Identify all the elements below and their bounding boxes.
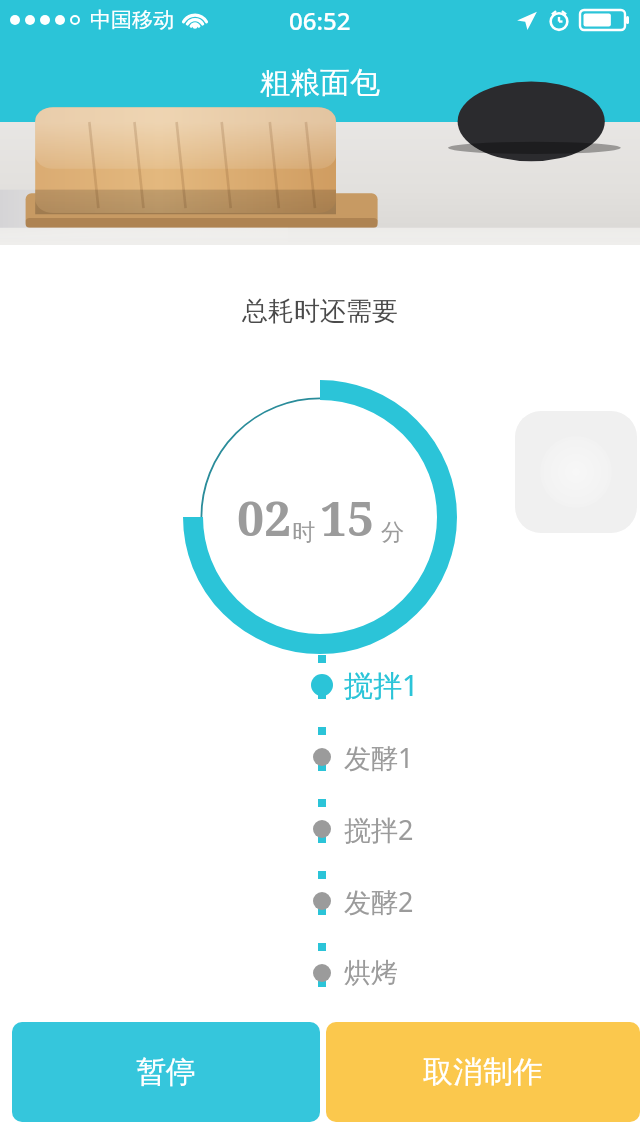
button[interactable]: 搅拌2 <box>344 807 524 851</box>
staticText: 中国移动 <box>90 7 174 33</box>
staticText: 06:52 <box>289 4 351 37</box>
button[interactable]: 发酵1 <box>344 735 524 779</box>
staticText: 搅拌2 <box>344 811 414 848</box>
staticText: 烘烤 <box>344 956 398 990</box>
button[interactable]: 搅拌1 <box>344 663 524 707</box>
button[interactable]: 暂停 <box>12 1022 320 1122</box>
staticText: 发酵2 <box>344 883 414 920</box>
staticText: 粗粮面包 <box>260 64 380 102</box>
staticText: 发酵1 <box>344 739 414 776</box>
staticText: 02 <box>237 485 292 550</box>
staticText: 总耗时还需要 <box>0 295 640 328</box>
button[interactable]: Preview <box>515 411 637 533</box>
staticText: 取消制作 <box>423 1053 543 1091</box>
staticText: 搅拌1 <box>344 665 419 705</box>
staticText: 分 <box>381 518 404 547</box>
button[interactable]: 发酵2 <box>344 879 524 923</box>
staticText: 时 <box>292 518 315 547</box>
button[interactable]: 烘烤 <box>344 951 524 995</box>
staticText: 15 <box>320 485 375 550</box>
button[interactable]: 取消制作 <box>326 1022 640 1122</box>
staticText: 暂停 <box>136 1053 196 1091</box>
